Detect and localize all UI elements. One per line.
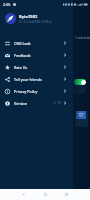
button[interactable]: DNS Leak: [0, 37, 73, 49]
staticText: Byte2982: [19, 14, 38, 19]
button[interactable]: Select server: [75, 111, 88, 127]
button[interactable]: Rate Us: [0, 61, 73, 73]
button[interactable]: Feedback: [0, 49, 73, 61]
button[interactable]: Version: [0, 97, 73, 109]
staticText: Connected: [75, 35, 90, 40]
staticText: Tell your friends: [14, 77, 42, 82]
staticText: Rate Us: [14, 65, 28, 70]
button[interactable]: Tell your friends: [0, 73, 73, 85]
staticText: 2:36: [3, 2, 11, 7]
button[interactable]: Home: [39, 189, 52, 200]
staticText: Version: [14, 101, 27, 106]
staticText: ID: 4-2-2ad2f902-1f9f4cd: [19, 20, 52, 24]
button[interactable]: Byte2982: [0, 12, 73, 25]
staticText: v1.70: [53, 101, 61, 105]
button[interactable]: VPN toggle: [74, 79, 86, 85]
button[interactable]: Privacy Policy: [0, 85, 73, 97]
button[interactable]: Back: [17, 189, 30, 200]
staticText: Privacy Policy: [14, 89, 38, 94]
staticText: DNS Leak: [14, 41, 31, 46]
button[interactable]: Recents: [60, 189, 73, 200]
staticText: Feedback: [14, 53, 31, 58]
